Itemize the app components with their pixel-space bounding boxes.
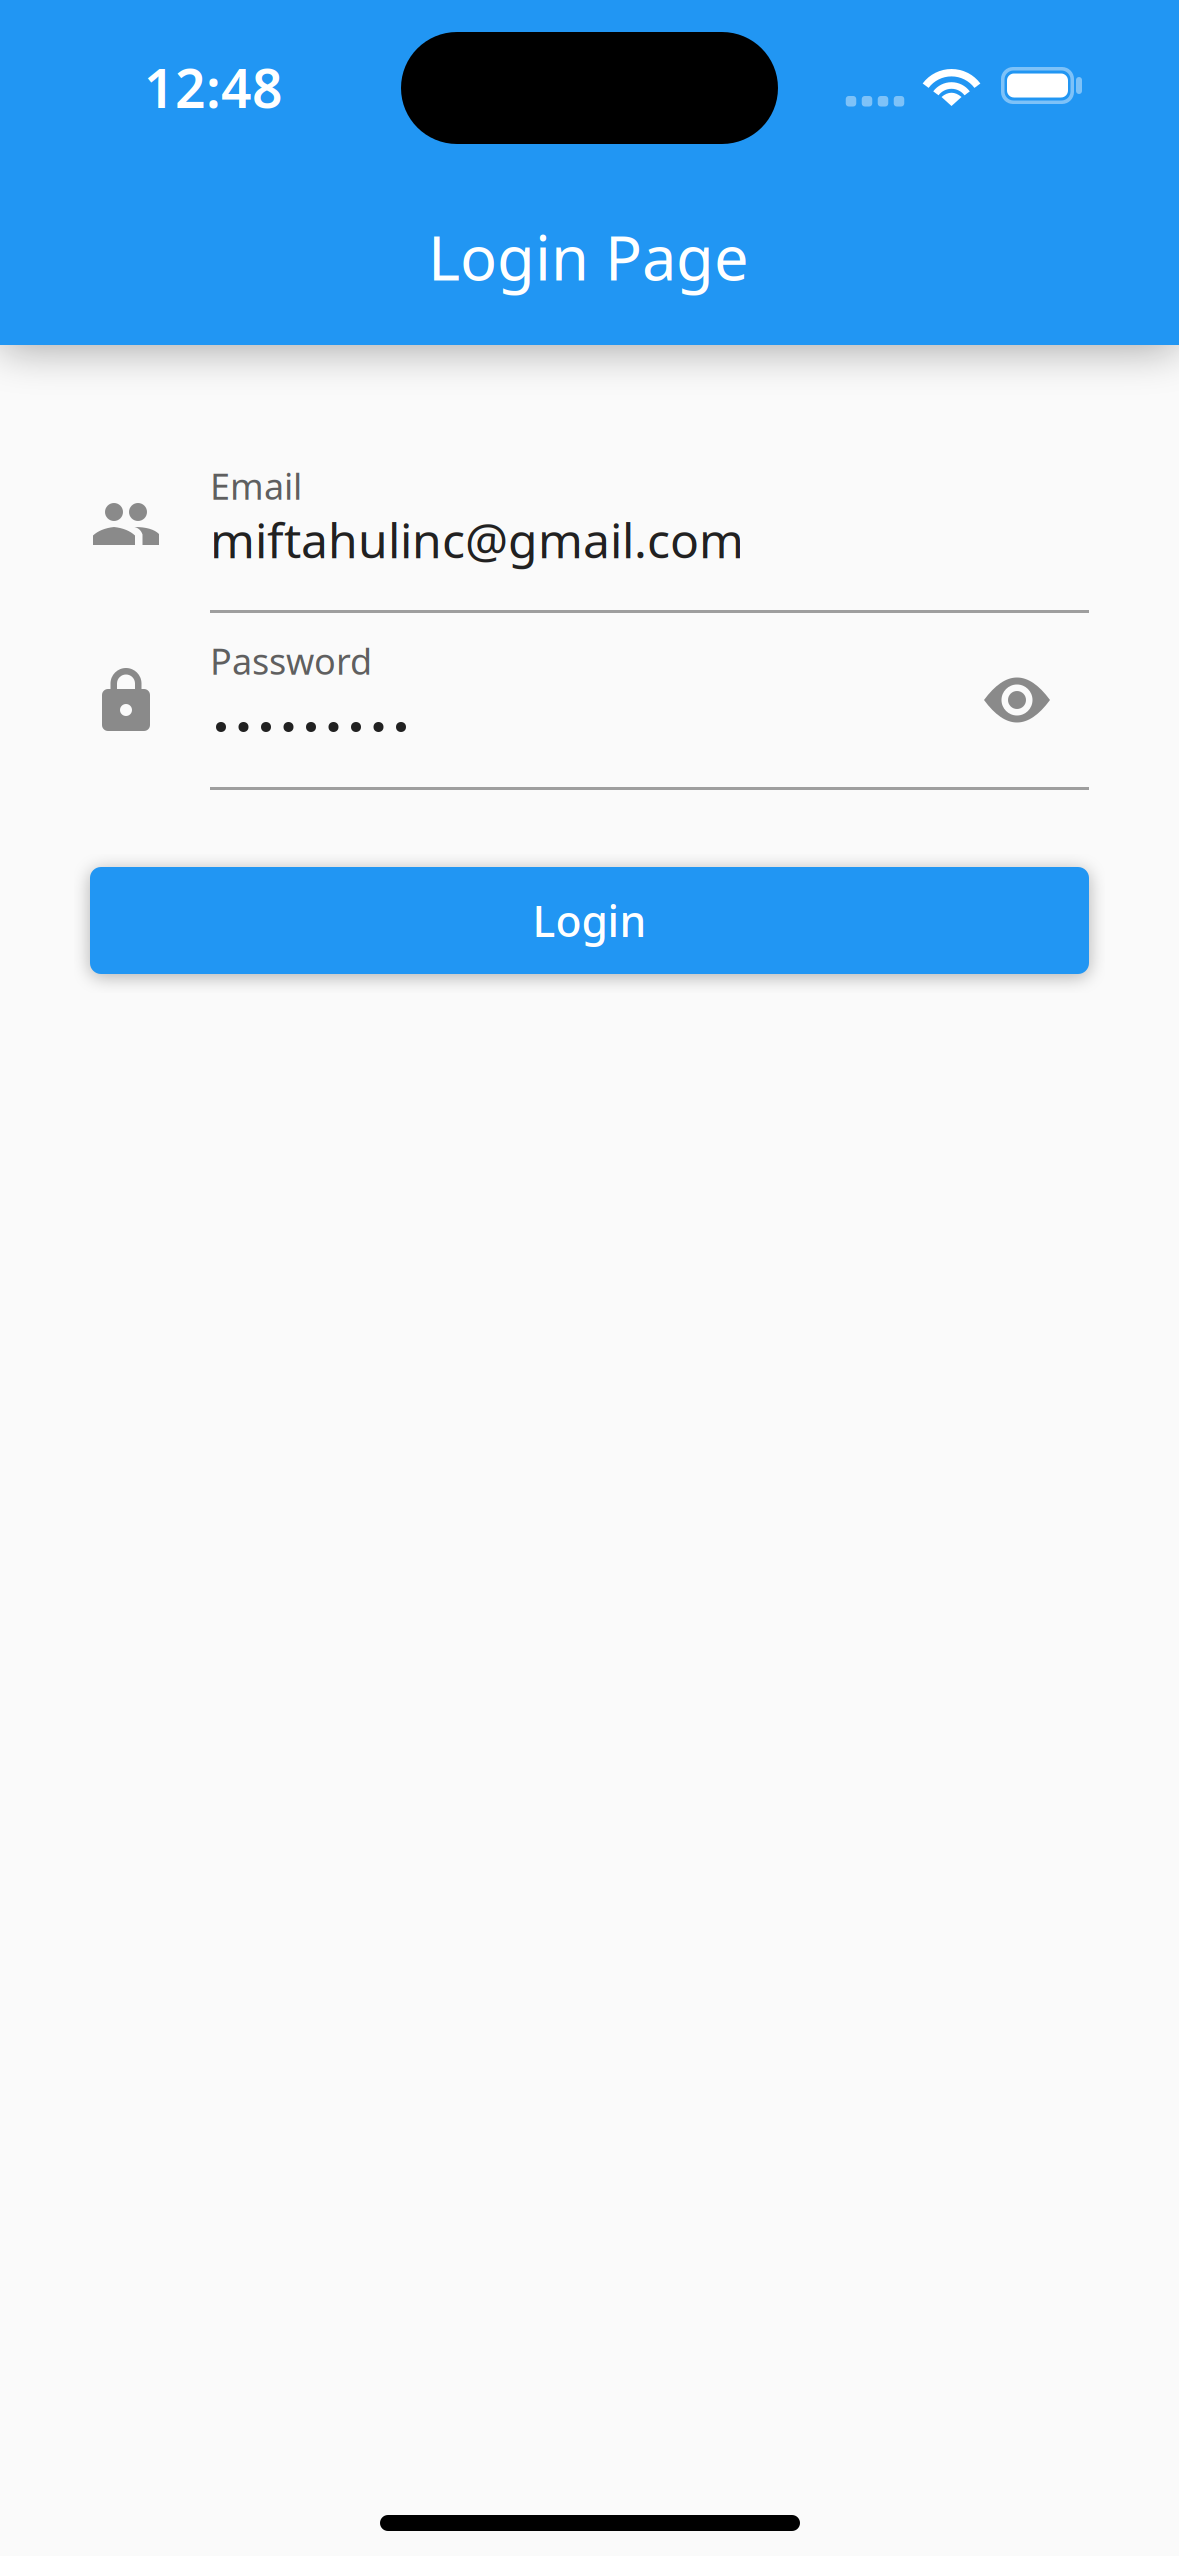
button[interactable]: Login	[90, 867, 1089, 974]
staticText: 12:48	[144, 52, 283, 123]
staticText: Email	[210, 462, 302, 510]
staticText: Password	[210, 637, 372, 685]
staticText: Login	[532, 892, 646, 949]
staticText: Login Page	[428, 216, 749, 297]
button[interactable]: Email	[210, 455, 1089, 613]
staticText: miftahulinc@gmail.com	[210, 508, 744, 571]
button[interactable]: Password	[210, 630, 1089, 790]
button[interactable]: Show password	[954, 647, 1080, 753]
